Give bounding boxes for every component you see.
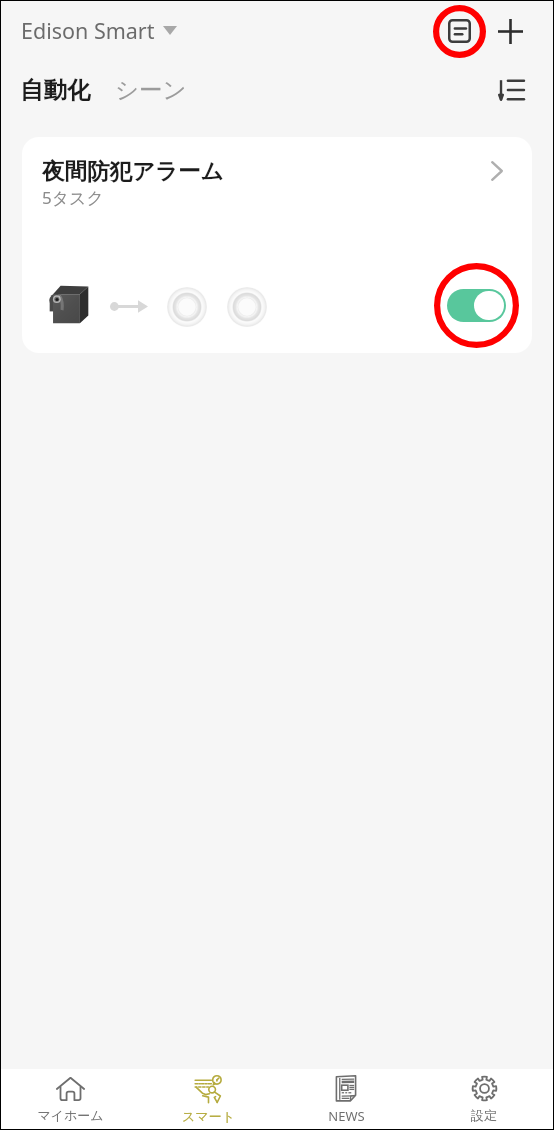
button[interactable]: 夜間防犯アラーム: [22, 137, 532, 353]
staticText: スマート: [182, 1108, 235, 1124]
button[interactable]: Edison Smart: [21, 8, 177, 53]
button[interactable]: Open details: [480, 154, 514, 188]
button[interactable]: Add: [487, 8, 533, 54]
staticText: 夜間防犯アラーム: [42, 157, 224, 185]
staticText: 設定: [471, 1107, 497, 1123]
button[interactable]: 設定: [415, 1069, 553, 1129]
button[interactable]: NEWS: [277, 1069, 415, 1129]
staticText: 5タスク: [42, 186, 104, 209]
button[interactable]: スマート: [139, 1069, 277, 1129]
button[interactable]: Activity log: [431, 3, 487, 59]
staticText: NEWS: [328, 1107, 365, 1125]
staticText: シーン: [115, 75, 187, 105]
button[interactable]: 自動化: [20, 67, 91, 113]
button[interactable]: シーン: [115, 67, 187, 113]
button[interactable]: マイホーム: [1, 1069, 139, 1129]
button[interactable]: Toggle automation: [434, 263, 519, 348]
button[interactable]: Sort: [489, 68, 533, 112]
staticText: 自動化: [20, 75, 91, 105]
staticText: マイホーム: [37, 1107, 104, 1123]
staticText: Edison Smart: [21, 16, 155, 45]
